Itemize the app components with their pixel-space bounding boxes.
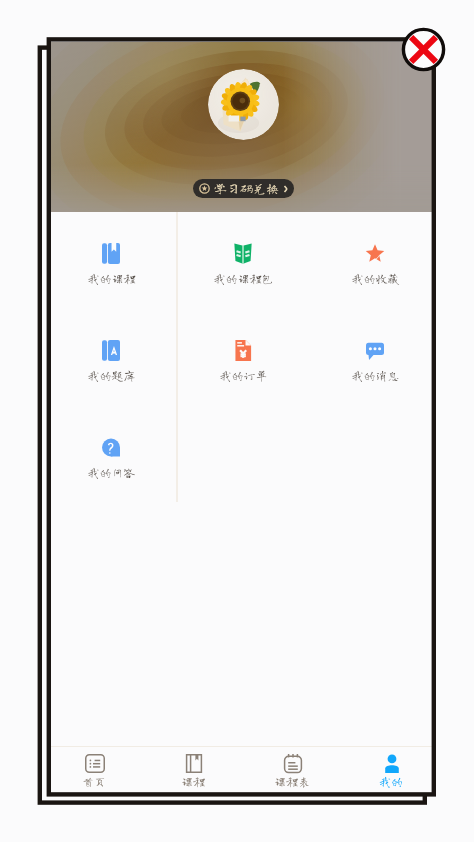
button[interactable]: 我的订单 bbox=[177, 309, 309, 406]
button[interactable]: 首页 bbox=[51, 747, 144, 793]
staticText: 我的订单 bbox=[219, 369, 268, 381]
staticText: 首页 bbox=[82, 775, 107, 787]
staticText: 课程 bbox=[181, 775, 206, 787]
staticText: 我的 bbox=[379, 775, 404, 787]
button[interactable]: Close bbox=[399, 25, 448, 74]
staticText: 学习码兑换 bbox=[214, 182, 280, 195]
button[interactable]: 学习码兑换 bbox=[193, 179, 294, 198]
button[interactable]: Avatar bbox=[208, 69, 279, 140]
staticText: 我的课程 bbox=[87, 272, 136, 284]
button[interactable]: 我的课程 bbox=[51, 212, 177, 309]
staticText: 我的课程包 bbox=[213, 272, 274, 284]
button[interactable]: 我的问答 bbox=[51, 406, 177, 503]
button[interactable]: 我的题库 bbox=[51, 309, 177, 406]
staticText: 我的收藏 bbox=[351, 272, 400, 284]
button[interactable]: 我的课程包 bbox=[177, 212, 309, 309]
staticText: 我的消息 bbox=[351, 369, 400, 381]
button[interactable]: 我的消息 bbox=[309, 309, 432, 406]
staticText: 我的问答 bbox=[87, 466, 136, 478]
staticText: 我的题库 bbox=[87, 369, 136, 381]
staticText: 课程表 bbox=[274, 775, 311, 787]
button[interactable]: 课程表 bbox=[243, 747, 342, 793]
button[interactable]: 课程 bbox=[144, 747, 243, 793]
button[interactable]: 我的 bbox=[342, 747, 432, 793]
button[interactable]: 我的收藏 bbox=[309, 212, 432, 309]
